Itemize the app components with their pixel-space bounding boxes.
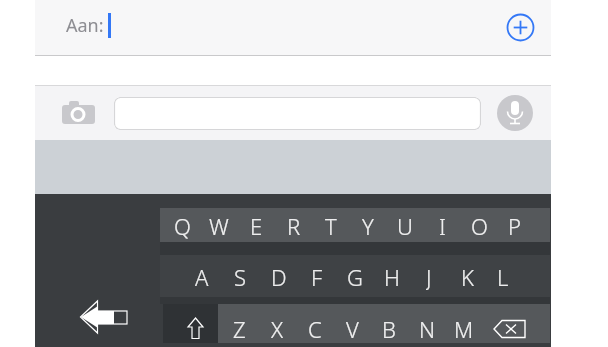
button[interactable]: V	[336, 314, 368, 342]
button[interactable]: Aan:	[35, 0, 551, 55]
button[interactable]: Y	[352, 211, 384, 239]
button[interactable]: Z	[223, 314, 255, 342]
button[interactable]: Q	[166, 211, 198, 239]
button[interactable]: O	[463, 211, 495, 239]
button[interactable]: G	[339, 262, 371, 290]
staticText: G	[347, 262, 363, 290]
button[interactable]: W	[203, 211, 235, 239]
button[interactable]: N	[411, 314, 443, 342]
button[interactable]: C	[299, 314, 331, 342]
button[interactable]	[497, 95, 533, 131]
button[interactable]: E	[240, 211, 272, 239]
staticText: Z	[233, 314, 246, 342]
button[interactable]	[490, 316, 530, 342]
staticText: Q	[174, 211, 191, 239]
staticText: U	[397, 211, 413, 239]
button[interactable]	[164, 303, 219, 341]
staticText: J	[426, 262, 432, 290]
staticText: V	[346, 314, 359, 342]
staticText: Y	[362, 211, 374, 239]
staticText: O	[471, 211, 488, 239]
staticText: X	[271, 314, 284, 342]
staticText: R	[287, 211, 301, 239]
button[interactable]: T	[315, 211, 347, 239]
button[interactable]: J	[413, 262, 445, 290]
staticText: T	[325, 211, 337, 239]
staticText: C	[308, 314, 322, 342]
staticText: B	[382, 314, 396, 342]
staticText: F	[311, 262, 323, 290]
button[interactable]: X	[261, 314, 293, 342]
button[interactable]: A	[186, 262, 218, 290]
staticText: A	[195, 262, 209, 290]
button[interactable]: M	[448, 314, 480, 342]
button[interactable]	[506, 13, 535, 42]
staticText: E	[250, 211, 263, 239]
staticText: M	[454, 314, 474, 342]
staticText: S	[234, 262, 247, 290]
button[interactable]: F	[301, 262, 333, 290]
staticText: H	[384, 262, 400, 290]
staticText: P	[508, 211, 521, 239]
button[interactable]	[114, 97, 481, 130]
button[interactable]: D	[263, 262, 295, 290]
button[interactable]: I	[426, 211, 458, 239]
button[interactable]	[75, 297, 131, 337]
button[interactable]: B	[373, 314, 405, 342]
button[interactable]: K	[451, 262, 483, 290]
button[interactable]: L	[487, 262, 519, 290]
button[interactable]: S	[224, 262, 256, 290]
button[interactable]: U	[389, 211, 421, 239]
button[interactable]: R	[278, 211, 310, 239]
staticText: K	[461, 262, 474, 290]
button[interactable]: P	[498, 211, 530, 239]
staticText: D	[271, 262, 287, 290]
button[interactable]	[60, 100, 96, 126]
staticText: L	[497, 262, 509, 290]
staticText: W	[209, 211, 229, 239]
staticText: I	[439, 211, 446, 239]
staticText: Aan:	[66, 13, 104, 38]
staticText: N	[419, 314, 436, 342]
button[interactable]: H	[376, 262, 408, 290]
